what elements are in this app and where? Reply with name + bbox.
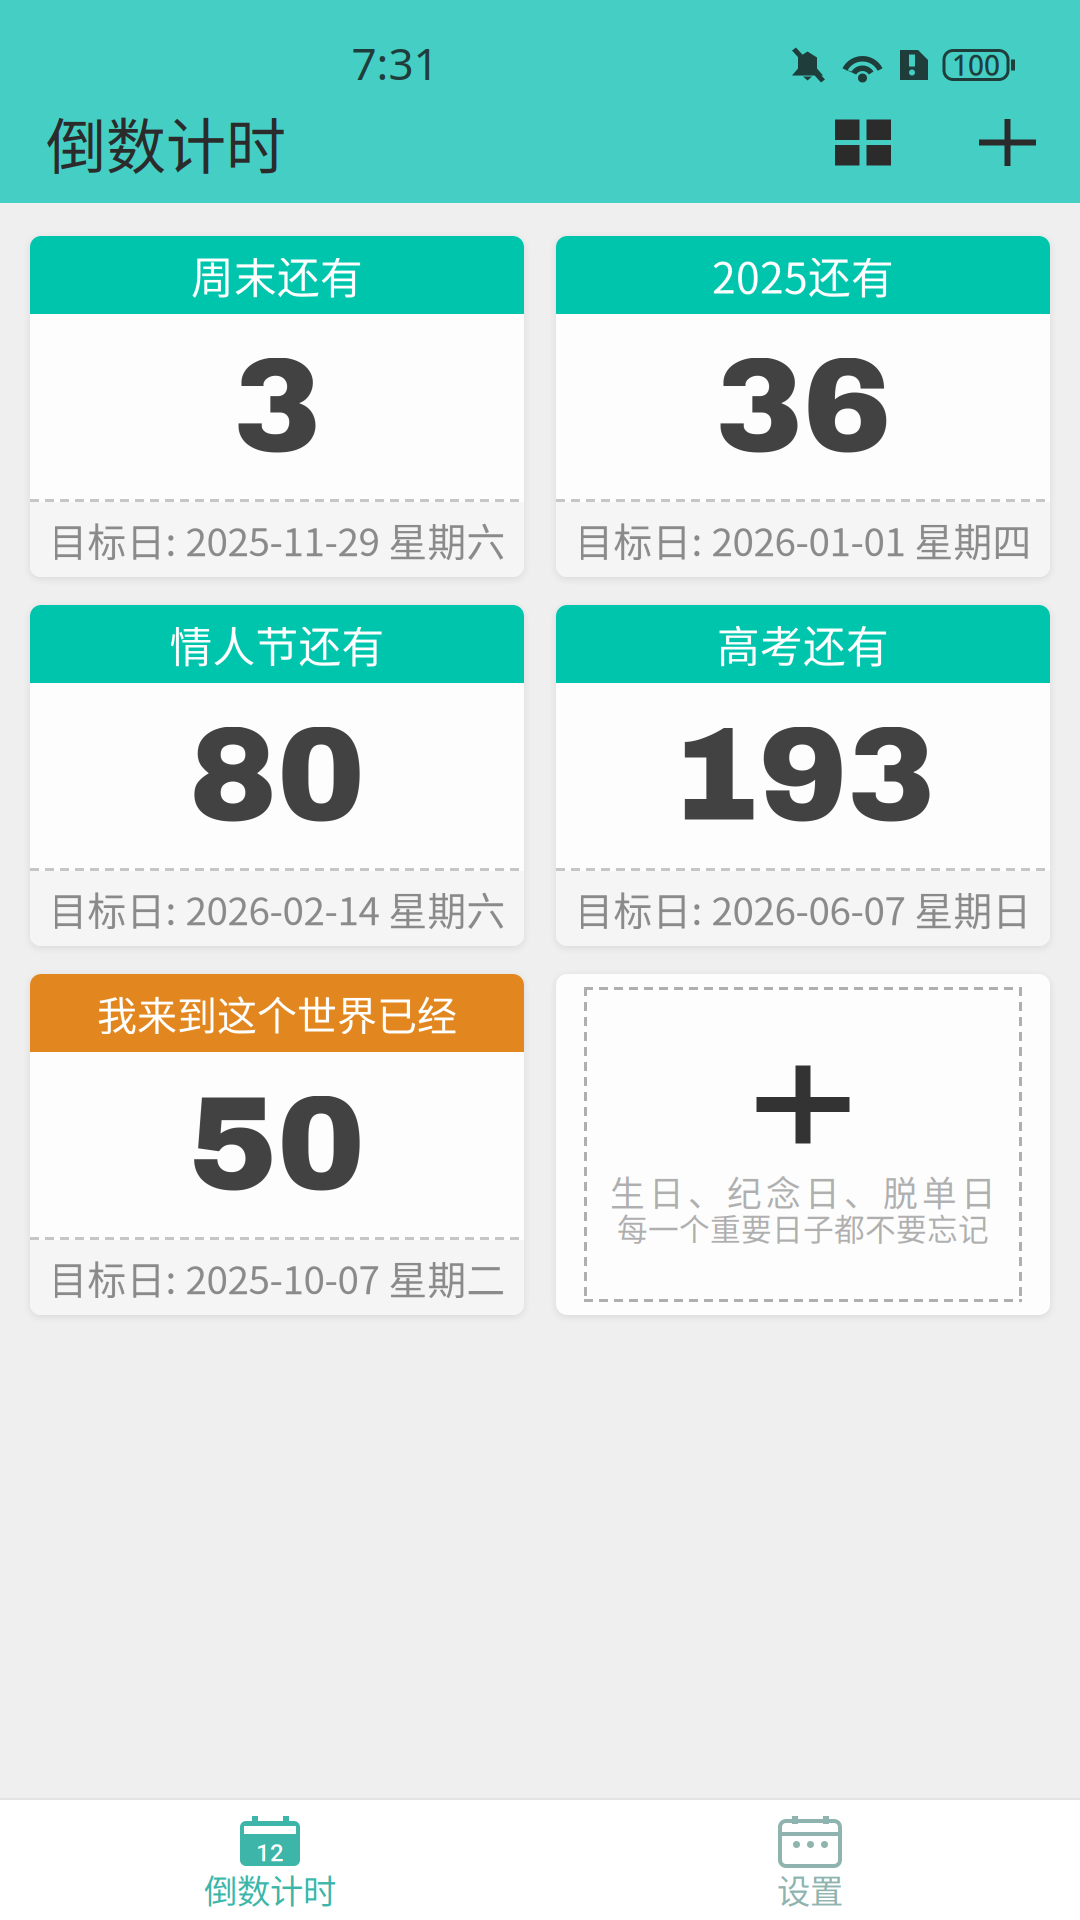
button[interactable]: 周末还有 xyxy=(30,236,524,577)
staticText: 设置 xyxy=(777,1865,843,1913)
staticText: 193 xyxy=(671,704,935,847)
staticText: 12 xyxy=(256,1839,284,1867)
staticText: 目标日: 2026-02-14 星期六 xyxy=(48,880,505,936)
staticText: 2025还有 xyxy=(712,244,894,306)
staticText: 50 xyxy=(189,1073,365,1216)
staticText: 36 xyxy=(715,335,891,478)
staticText: 7:31 xyxy=(351,34,438,92)
staticText: 3 xyxy=(233,335,321,478)
staticText: 我来到这个世界已经 xyxy=(97,984,457,1042)
staticText: 倒数计时 xyxy=(46,99,286,186)
button[interactable]: 新建 xyxy=(954,99,1061,199)
staticText: 目标日: 2026-06-07 星期日 xyxy=(574,880,1031,936)
staticText: 目标日: 2025-10-07 星期二 xyxy=(48,1249,505,1305)
button[interactable]: 设置 xyxy=(540,1800,1080,1920)
staticText: 目标日: 2026-01-01 星期四 xyxy=(574,511,1031,567)
staticText: 80 xyxy=(189,704,365,847)
button[interactable]: 添加倒数日 xyxy=(556,974,1050,1315)
staticText: 周末还有 xyxy=(191,244,363,306)
staticText: 情人节还有 xyxy=(169,613,384,675)
button[interactable]: 12 xyxy=(0,1800,540,1920)
staticText: 每一个重要日子都不要忘记 xyxy=(617,1205,989,1250)
staticText: 100 xyxy=(952,46,1000,84)
staticText: 生日、纪念日、脱单日 xyxy=(610,1166,996,1217)
staticText: 目标日: 2025-11-29 星期六 xyxy=(48,511,505,567)
staticText: 倒数计时 xyxy=(204,1865,336,1913)
button[interactable]: 视图切换 xyxy=(772,99,954,199)
button[interactable]: 高考还有 xyxy=(556,605,1050,946)
staticText: 高考还有 xyxy=(717,613,889,675)
button[interactable]: 2025还有 xyxy=(556,236,1050,577)
button[interactable]: 情人节还有 xyxy=(30,605,524,946)
button[interactable]: 我来到这个世界已经 xyxy=(30,974,524,1315)
